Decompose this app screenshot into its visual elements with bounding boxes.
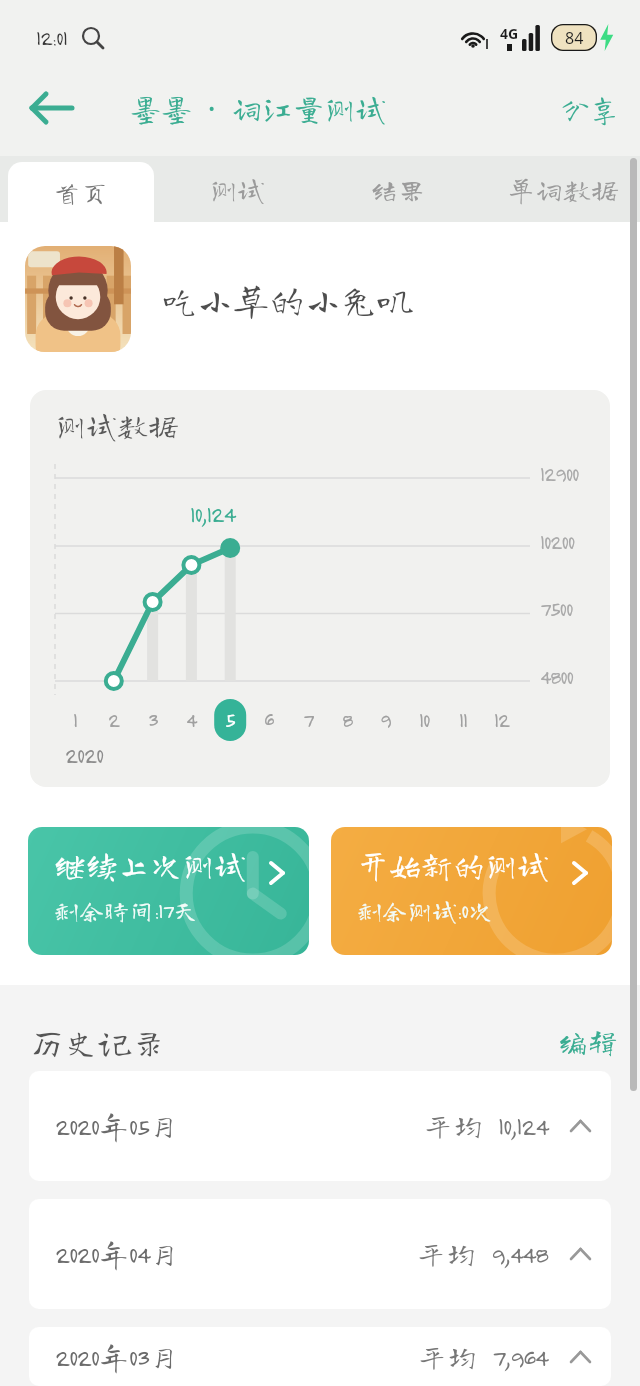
- button[interactable]: [22, 83, 82, 133]
- staticText: 开始新的测试: [357, 849, 550, 881]
- staticText: 分享: [561, 94, 620, 123]
- staticText: 10200: [540, 530, 575, 554]
- button[interactable]: 单词数据: [492, 156, 634, 222]
- staticText: 继续上次测试: [54, 849, 247, 881]
- staticText: 2020年03月: [55, 1342, 179, 1372]
- staticText: 平均 7,964: [417, 1342, 548, 1372]
- staticText: 编辑: [558, 1027, 618, 1057]
- staticText: 2020年05月: [55, 1111, 179, 1141]
- staticText: 历史记录: [30, 1025, 166, 1059]
- staticText: 2: [108, 708, 120, 732]
- staticText: 4: [186, 708, 197, 732]
- staticText: 7: [303, 708, 314, 732]
- staticText: 10,124: [190, 500, 235, 527]
- staticText: 5: [225, 708, 235, 732]
- staticText: 1: [73, 708, 77, 732]
- button[interactable]: 2020年04月: [29, 1199, 611, 1309]
- staticText: 4800: [540, 665, 573, 689]
- staticText: 平均 10,124: [423, 1111, 548, 1141]
- staticText: 吃小草的小兔叽: [161, 281, 414, 317]
- staticText: 2020年04月: [55, 1239, 180, 1269]
- staticText: 12: [494, 708, 510, 732]
- staticText: 7500: [540, 597, 573, 621]
- button[interactable]: 分享: [561, 94, 620, 123]
- staticText: 11: [459, 708, 467, 732]
- staticText: 9: [380, 708, 391, 732]
- staticText: 84: [565, 27, 584, 49]
- staticText: 剩余时间:17天: [54, 898, 198, 923]
- staticText: 剩余测试:0次: [357, 898, 493, 923]
- button[interactable]: 测试: [177, 156, 297, 222]
- staticText: 3: [148, 708, 158, 732]
- staticText: 首页: [53, 178, 110, 206]
- button[interactable]: 2020年05月: [29, 1071, 611, 1181]
- staticText: 4G: [500, 24, 519, 43]
- staticText: 墨墨 · 词汇量测试: [130, 87, 387, 129]
- staticText: 2020: [65, 742, 103, 768]
- staticText: 平均 9,448: [416, 1239, 548, 1269]
- staticText: 8: [342, 708, 353, 732]
- button[interactable]: 开始新的测试: [331, 827, 612, 955]
- staticText: 测试数据: [55, 410, 179, 441]
- staticText: 结果: [370, 175, 427, 203]
- button[interactable]: 继续上次测试: [28, 827, 309, 955]
- staticText: 6: [264, 708, 274, 732]
- button[interactable]: 2020年03月: [29, 1327, 611, 1386]
- staticText: 单词数据: [507, 175, 620, 203]
- staticText: 10: [419, 708, 430, 732]
- button[interactable]: 首页: [8, 162, 154, 222]
- staticText: 测试: [209, 175, 266, 203]
- staticText: 12900: [540, 462, 579, 486]
- staticText: 12:01: [36, 25, 67, 50]
- button[interactable]: 编辑: [558, 1027, 618, 1057]
- button[interactable]: [25, 246, 131, 352]
- button[interactable]: 结果: [338, 156, 458, 222]
